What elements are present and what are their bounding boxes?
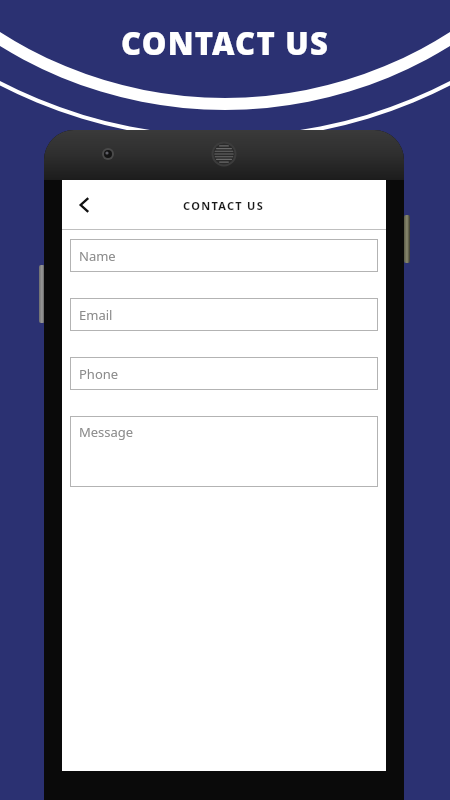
button[interactable]: Name xyxy=(70,239,378,272)
staticText: Name xyxy=(79,247,116,265)
staticText: CONTACT US xyxy=(183,198,265,213)
button[interactable]: Message xyxy=(70,416,378,487)
button[interactable]: Phone xyxy=(70,357,378,390)
staticText: Message xyxy=(79,423,134,441)
staticText: Phone xyxy=(79,365,119,383)
staticText: CONTACT US xyxy=(121,22,329,64)
button[interactable]: Back xyxy=(62,182,108,228)
staticText: Email xyxy=(79,306,113,324)
button[interactable]: Email xyxy=(70,298,378,331)
